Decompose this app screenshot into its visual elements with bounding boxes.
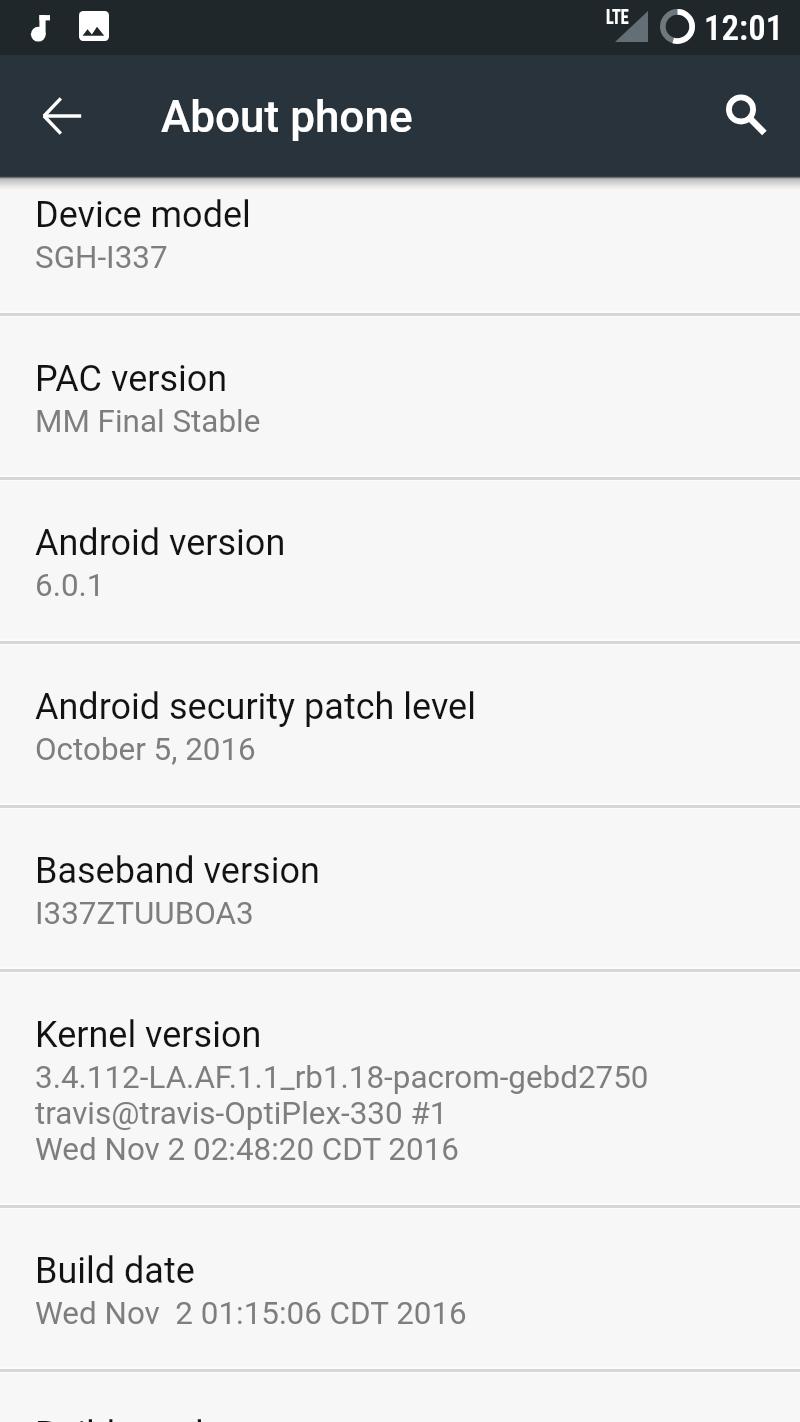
staticText: Build date — [35, 1251, 195, 1291]
button[interactable]: Build date — [0, 1209, 800, 1367]
staticText: travis@travis-OptiPlex-330 #1 — [35, 1095, 448, 1131]
staticText: Kernel version — [35, 1015, 262, 1055]
staticText: About phone — [161, 91, 413, 143]
button[interactable]: Android version — [0, 481, 800, 639]
staticText: Baseband version — [35, 851, 320, 891]
staticText: 3.4.112-LA.AF.1.1_rb1.18-pacrom-gebd2750 — [35, 1059, 649, 1095]
button[interactable]: PAC version — [0, 317, 800, 475]
button[interactable]: Device model — [0, 176, 800, 311]
staticText: MM Final Stable — [35, 403, 261, 439]
button[interactable]: Build number — [0, 1373, 800, 1422]
button[interactable]: Android security patch level — [0, 645, 800, 803]
button[interactable]: Search — [710, 78, 782, 150]
button[interactable]: Baseband version — [0, 809, 800, 967]
staticText: Build number — [35, 1415, 247, 1422]
staticText: Android security patch level — [35, 687, 476, 727]
staticText: October 5, 2016 — [35, 731, 256, 767]
staticText: LTE — [606, 5, 629, 28]
staticText: Wed Nov 2 01:15:06 CDT 2016 — [35, 1295, 467, 1331]
button[interactable]: Back — [26, 80, 98, 152]
staticText: PAC version — [35, 359, 228, 399]
staticText: 12:01 — [704, 8, 784, 49]
staticText: 6.0.1 — [35, 567, 105, 603]
staticText: SGH-I337 — [35, 239, 168, 275]
staticText: Device model — [35, 195, 251, 235]
staticText: Android version — [35, 523, 286, 563]
button[interactable]: Kernel version — [0, 973, 800, 1203]
staticText: Wed Nov 2 02:48:20 CDT 2016 — [35, 1131, 459, 1167]
staticText: I337ZTUUBOA3 — [35, 895, 254, 931]
